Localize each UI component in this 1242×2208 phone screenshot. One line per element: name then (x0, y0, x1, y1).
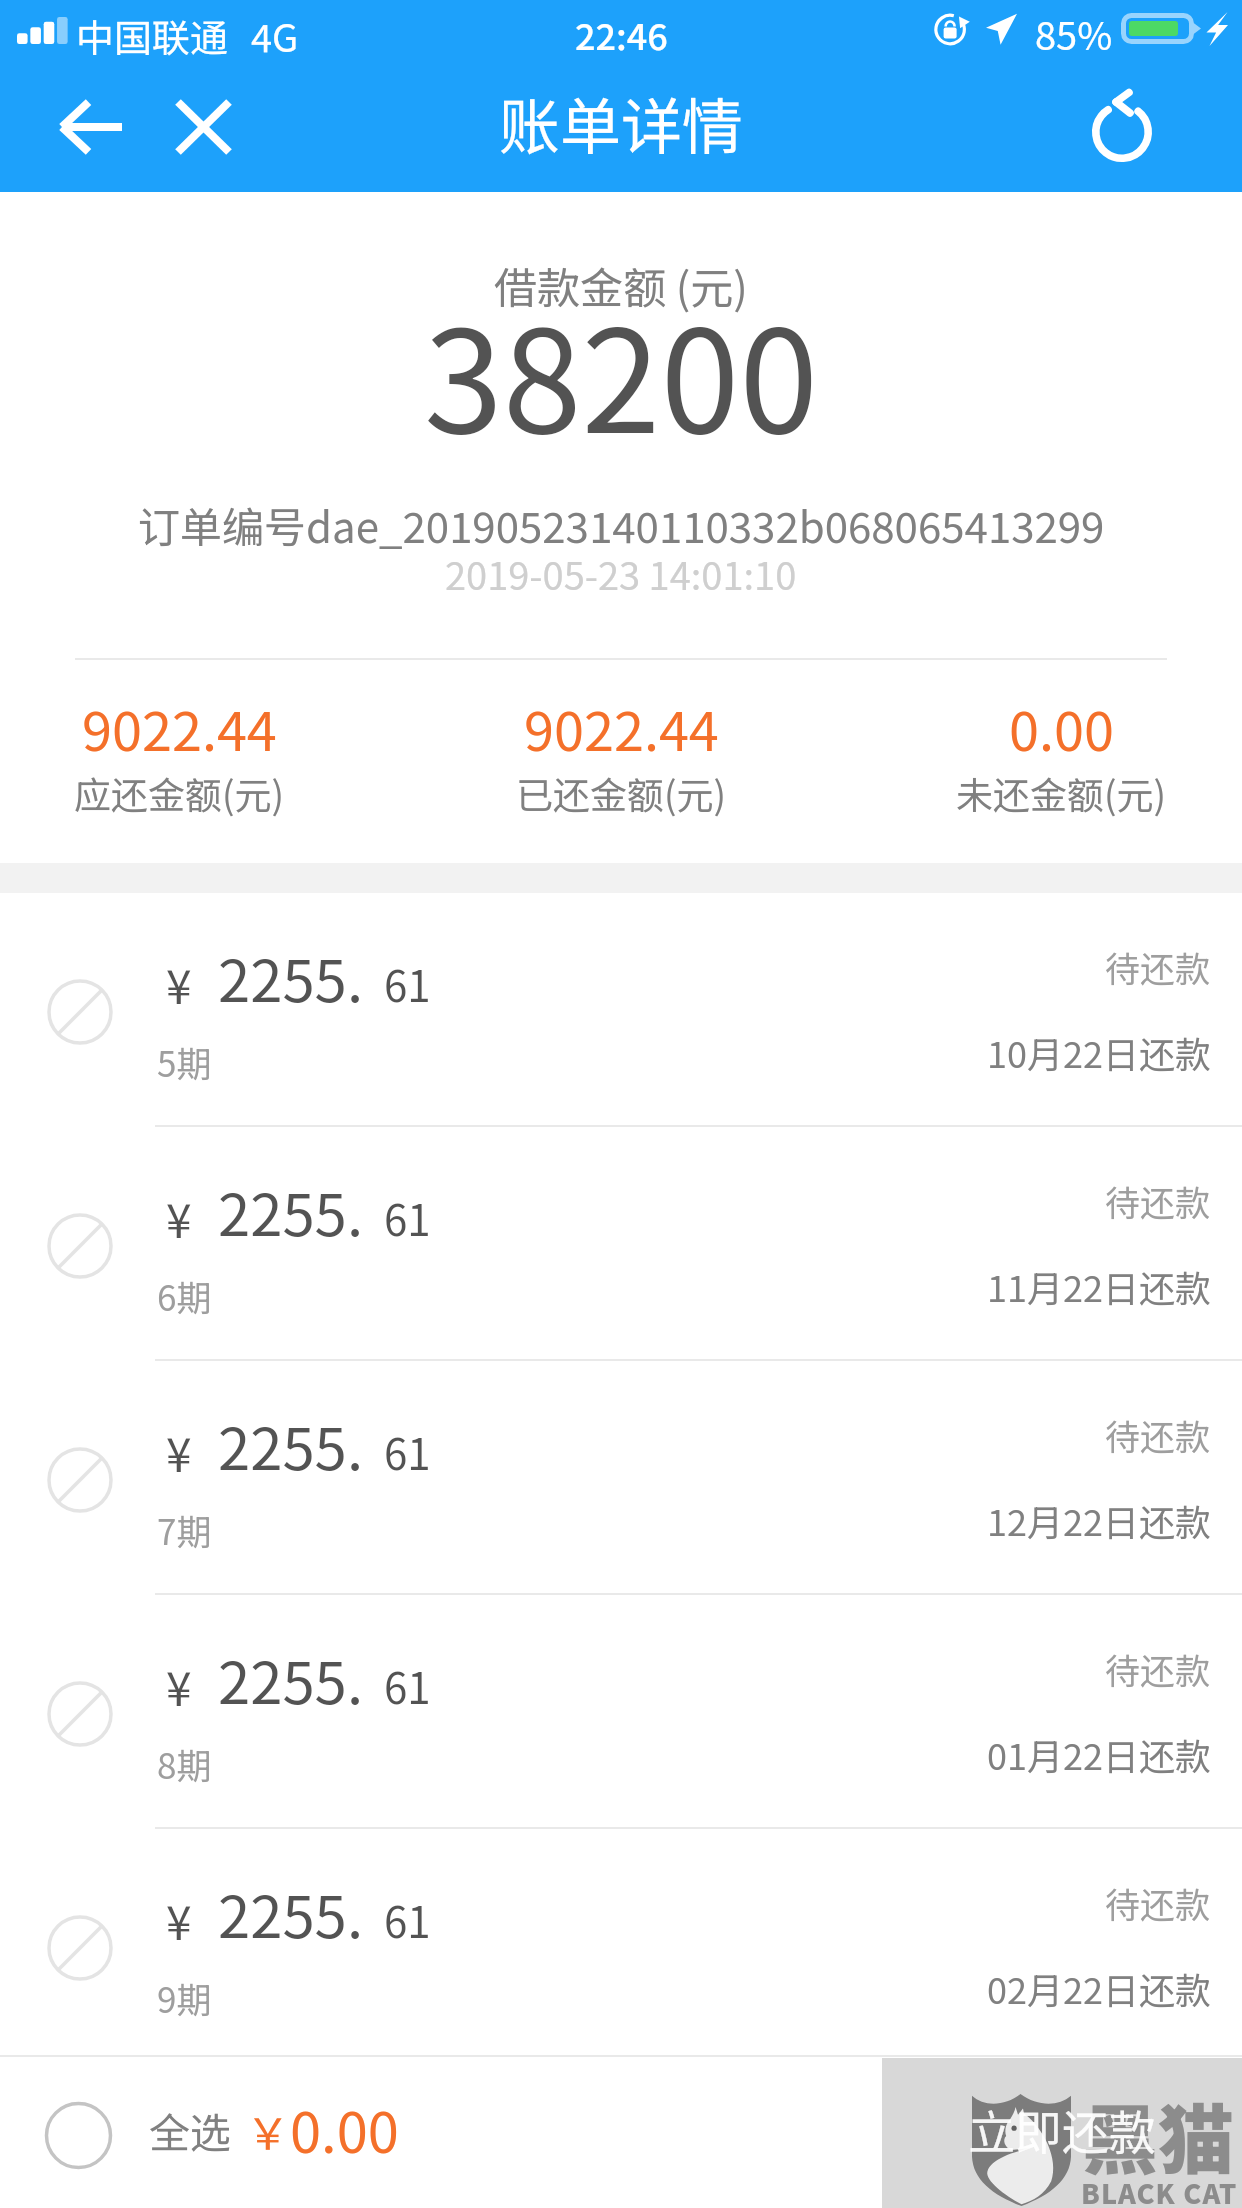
staticText: 待还款 (1105, 1877, 1211, 1928)
staticText: 61 (384, 953, 431, 1014)
staticText: ¥ (166, 1419, 192, 1486)
button[interactable]: Back (39, 62, 143, 192)
button[interactable]: ¥ (0, 1829, 1242, 2061)
button[interactable]: ¥ (0, 1127, 1242, 1359)
button[interactable]: Close (152, 62, 254, 192)
staticText: ￥ (246, 2099, 290, 2163)
staticText: 2255 (218, 1169, 347, 1253)
staticText: 未还金额(元) (956, 766, 1167, 820)
button[interactable]: ¥ (0, 1595, 1242, 1827)
staticText: 12月22日还款 (987, 1494, 1211, 1546)
staticText: 4G (251, 8, 299, 63)
staticText: 立即还款 (968, 2095, 1156, 2163)
staticText: 85% (1035, 6, 1113, 61)
staticText: . (347, 1871, 364, 1955)
staticText: 8期 (157, 1738, 212, 1789)
staticText: 账单详情 (499, 78, 744, 166)
staticText: 11月22日还款 (987, 1260, 1211, 1312)
button[interactable]: ¥ (0, 1361, 1242, 1593)
staticText: 待还款 (1105, 941, 1211, 992)
staticText: 待还款 (1105, 1175, 1211, 1226)
staticText: BLACK CAT (1081, 2173, 1238, 2208)
staticText: 待还款 (1105, 1643, 1211, 1694)
staticText: 已还金额(元) (516, 766, 727, 820)
staticText: 22:46 (575, 8, 668, 60)
staticText: 9022.44 (524, 688, 719, 766)
staticText: 中国联通 (76, 8, 229, 63)
staticText: 订单编号dae_20190523140110332b068065413299 (138, 494, 1105, 555)
staticText: . (347, 1169, 364, 1253)
staticText: 应还金额(元) (74, 766, 285, 820)
staticText: 9期 (157, 1972, 212, 2023)
staticText: 38200 (424, 268, 819, 474)
staticText: 2255 (218, 1871, 347, 1955)
button[interactable]: ¥ (0, 893, 1242, 1125)
staticText: 10月22日还款 (987, 1026, 1211, 1078)
staticText: 7期 (157, 1504, 212, 1555)
staticText: 02月22日还款 (987, 1962, 1211, 2014)
button[interactable]: 立即还款 (882, 2058, 1242, 2208)
staticText: . (347, 935, 364, 1019)
staticText: . (347, 1637, 364, 1721)
staticText: . (347, 1403, 364, 1487)
button[interactable]: Refresh (1057, 62, 1187, 192)
staticText: ¥ (166, 1185, 192, 1252)
staticText: 黑猫 (1082, 2080, 1234, 2190)
staticText: 待还款 (1105, 1409, 1211, 1460)
staticText: 全选 (149, 2100, 231, 2159)
staticText: ¥ (166, 1887, 192, 1954)
staticText: 61 (384, 1655, 431, 1716)
staticText: 01月22日还款 (987, 1728, 1211, 1780)
staticText: 61 (384, 1421, 431, 1482)
staticText: 6期 (157, 1270, 212, 1321)
staticText: 2255 (218, 935, 347, 1019)
staticText: ¥ (166, 1653, 192, 1720)
staticText: 0.00 (290, 2088, 399, 2169)
staticText: 61 (384, 1889, 431, 1950)
staticText: 借款金额 (元) (494, 254, 748, 316)
staticText: 61 (384, 1187, 431, 1248)
staticText: 2255 (218, 1637, 347, 1721)
staticText: 2255 (218, 1403, 347, 1487)
staticText: ¥ (166, 951, 192, 1018)
staticText: 0.00 (1009, 688, 1114, 766)
button[interactable]: 全选 (0, 2057, 880, 2208)
staticText: 2019-05-23 14:01:10 (445, 546, 797, 601)
staticText: 9022.44 (82, 688, 277, 766)
staticText: 5期 (157, 1036, 212, 1087)
